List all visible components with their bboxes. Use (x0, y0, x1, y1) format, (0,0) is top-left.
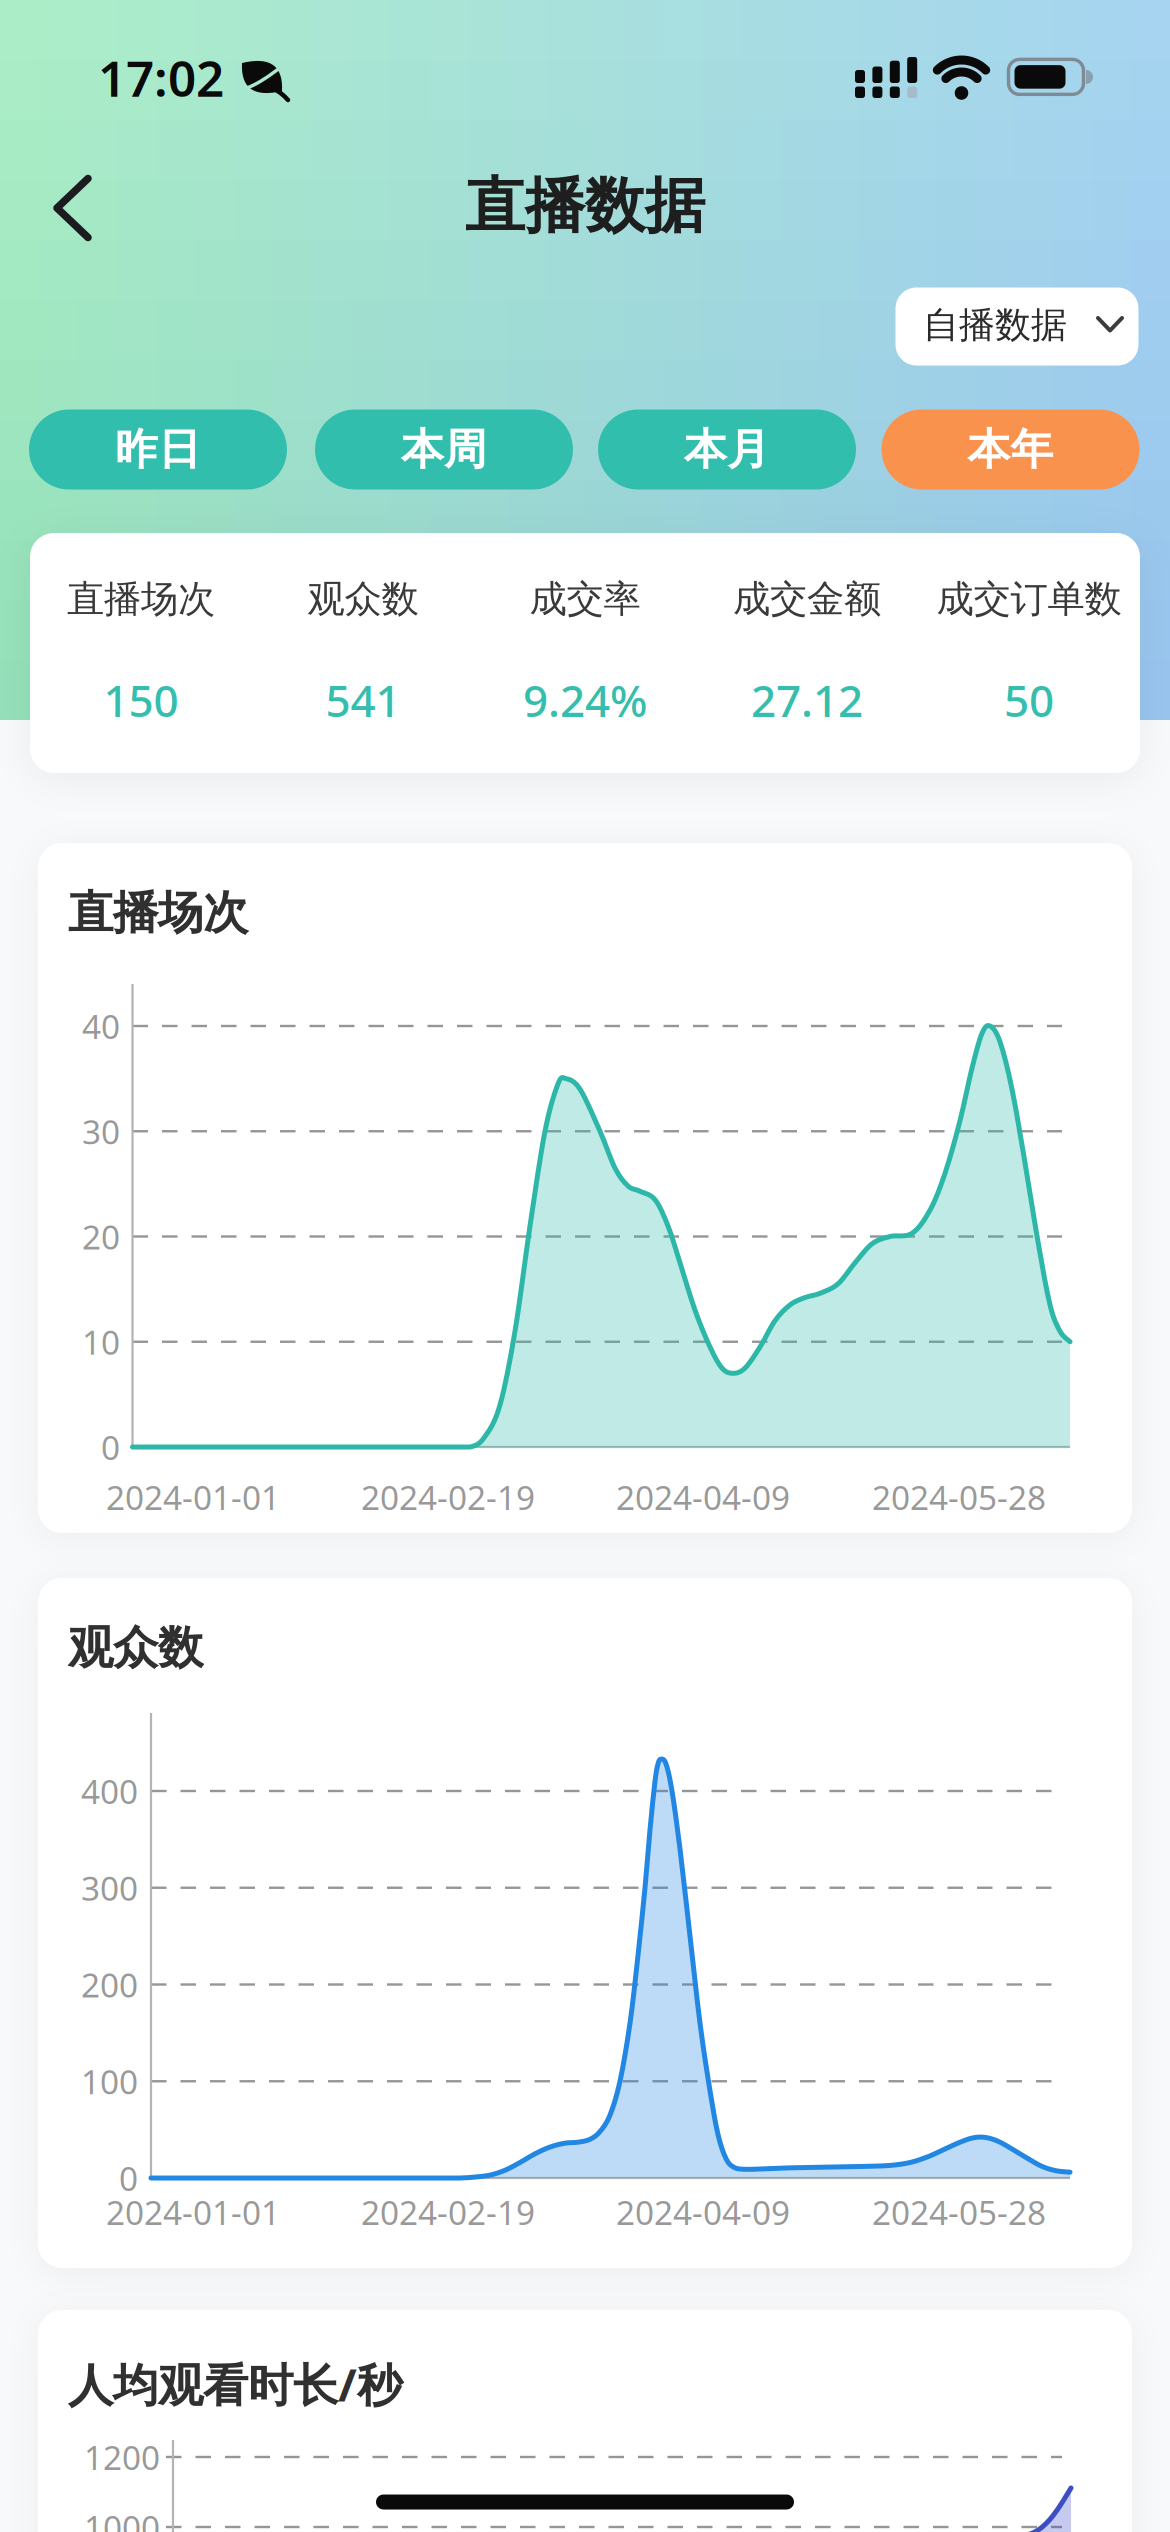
button[interactable]: 本月 (0, 0, 1170, 2532)
staticText: 2024-04-09 (616, 2190, 790, 2234)
staticText: 2024-02-19 (361, 2190, 535, 2234)
staticText: 100 (81, 2059, 138, 2103)
staticText: 2024-04-09 (616, 1475, 790, 1519)
staticText: 400 (81, 1769, 138, 1813)
staticText: 本年 (967, 423, 1053, 476)
staticText: 成交率 (529, 576, 640, 622)
staticText: 直播场次 (68, 885, 248, 941)
staticText: 本周 (401, 423, 487, 476)
button[interactable]: 昨日 (0, 0, 1170, 2532)
staticText: 成交订单数 (936, 576, 1121, 622)
staticText: 直播数据 (465, 169, 705, 243)
staticText: 观众数 (68, 1620, 203, 1676)
staticText: 2024-05-28 (872, 1475, 1046, 1519)
staticText: 成交金额 (733, 576, 881, 622)
staticText: 2024-01-01 (106, 2190, 280, 2234)
staticText: 2024-05-28 (872, 2190, 1046, 2234)
staticText: 10 (82, 1320, 120, 1364)
staticText: 27.12 (751, 671, 863, 729)
staticText: 20 (82, 1214, 120, 1259)
staticText: 9.24% (523, 671, 647, 729)
staticText: 本月 (684, 423, 770, 476)
button[interactable]: 本周 (0, 0, 1170, 2532)
staticText: 1200 (84, 2435, 160, 2479)
staticText: 观众数 (307, 576, 418, 622)
staticText: 17:02 (98, 45, 224, 110)
staticText: 自播数据 (923, 303, 1067, 347)
staticText: 300 (81, 1866, 138, 1910)
staticText: 2024-02-19 (361, 1475, 535, 1519)
staticText: 直播场次 (67, 576, 215, 622)
staticText: 50 (1004, 671, 1054, 729)
staticText: 2024-01-01 (106, 1475, 280, 1519)
staticText: 30 (82, 1109, 120, 1153)
staticText: 人均观看时长/秒 (68, 2354, 402, 2414)
staticText: 200 (81, 1962, 138, 2007)
staticText: 昨日 (115, 423, 201, 476)
staticText: 541 (325, 671, 400, 729)
staticText: 0 (101, 1425, 120, 1469)
staticText: 40 (82, 1004, 120, 1048)
button[interactable]: 返回 (0, 0, 1170, 2532)
staticText: 0 (119, 2156, 138, 2200)
staticText: 1000 (84, 2505, 160, 2532)
button[interactable]: 自播数据 (0, 0, 1170, 2532)
staticText: 150 (103, 671, 178, 729)
button[interactable]: 本年 (0, 0, 1170, 2532)
